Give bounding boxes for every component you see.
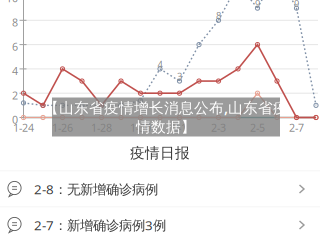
staticText: 8 xyxy=(216,9,221,22)
staticText: 8 xyxy=(12,15,18,29)
staticText: 2-1 xyxy=(172,120,187,135)
button[interactable]: 2-7：新增确诊病例3例 xyxy=(0,207,320,240)
staticText: 1-28 xyxy=(91,120,112,135)
staticText: 疫情日报 xyxy=(130,144,190,162)
staticText: 2 xyxy=(12,88,18,102)
staticText: 【山东省疫情增长消息公布,山东省疫 xyxy=(44,98,288,117)
staticText: 1-24 xyxy=(13,120,34,135)
staticText: 0 xyxy=(12,112,18,127)
staticText: 10 xyxy=(6,0,18,5)
staticText: 2-7 xyxy=(289,120,304,135)
staticText: 2-3 xyxy=(211,120,226,135)
staticText: 2-5 xyxy=(250,120,265,135)
button[interactable]: 2-8：无新增确诊病例 xyxy=(0,171,320,206)
staticText: 情数据】 xyxy=(136,118,196,136)
staticText: 3 xyxy=(177,70,182,82)
staticText: 2-7：新增确诊病例3例 xyxy=(34,216,166,234)
staticText: 9 xyxy=(294,0,299,9)
staticText: 9 xyxy=(255,0,260,9)
staticText: 1-30 xyxy=(130,120,151,135)
staticText: 4 xyxy=(12,64,18,78)
staticText: 1-26 xyxy=(52,120,73,135)
staticText: 4 xyxy=(157,58,162,70)
staticText: 6 xyxy=(12,40,18,54)
staticText: 2-8：无新增确诊病例 xyxy=(34,180,158,198)
